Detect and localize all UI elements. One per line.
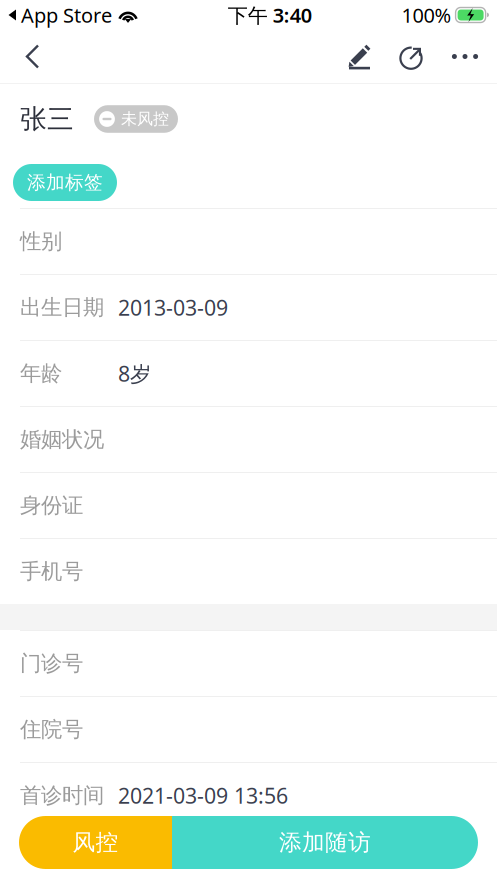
staticText: 首诊时间	[20, 782, 104, 809]
staticText: 添加标签	[27, 171, 103, 194]
button[interactable]: 性别	[0, 208, 497, 274]
staticText: 住院号	[20, 716, 83, 743]
staticText: 2013-03-09	[118, 293, 228, 322]
staticText: 下午 3:40	[228, 2, 312, 28]
button[interactable]: 手机号	[0, 538, 497, 604]
button[interactable]: 门诊号	[0, 630, 497, 696]
staticText: 身份证	[20, 492, 83, 519]
button[interactable]: 住院号	[0, 696, 497, 762]
staticText: 未风控	[121, 109, 169, 129]
button[interactable]: 年龄	[0, 340, 497, 406]
button[interactable]: 风控	[19, 816, 172, 869]
button[interactable]: 添加标签	[13, 164, 117, 201]
button[interactable]: 添加随访	[172, 816, 478, 869]
staticText: App Store	[21, 2, 112, 28]
staticText: 出生日期	[20, 294, 104, 321]
staticText: 8岁	[118, 359, 151, 388]
staticText: 性别	[20, 228, 62, 255]
staticText: 手机号	[20, 558, 83, 585]
button[interactable]: Back	[6, 30, 59, 83]
button[interactable]: 身份证	[0, 472, 497, 538]
staticText: 风控	[72, 829, 118, 856]
button[interactable]: Share	[386, 30, 439, 83]
button[interactable]: 出生日期	[0, 274, 497, 340]
staticText: 张三	[20, 103, 74, 135]
button[interactable]: More	[439, 30, 491, 83]
staticText: 婚姻状况	[20, 426, 104, 453]
staticText: 年龄	[20, 360, 62, 387]
staticText: 添加随访	[279, 829, 371, 856]
button[interactable]: 首诊时间	[0, 762, 497, 828]
staticText: 100%	[402, 2, 452, 28]
staticText: 门诊号	[20, 650, 83, 677]
staticText: 2021-03-09 13:56	[118, 781, 288, 810]
button[interactable]: 婚姻状况	[0, 406, 497, 472]
button[interactable]: Edit	[333, 30, 386, 83]
